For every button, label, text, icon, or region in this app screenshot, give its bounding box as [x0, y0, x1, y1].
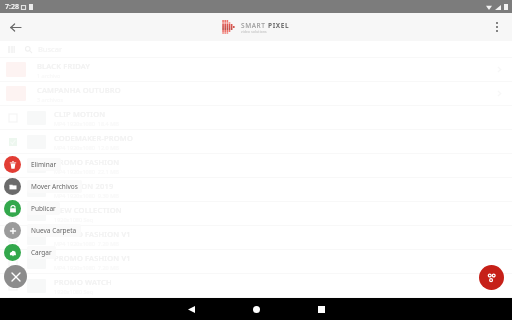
button[interactable]: Close menu [4, 265, 27, 288]
button[interactable]: Eliminar [4, 153, 61, 175]
button[interactable]: Recents [306, 298, 336, 320]
staticText: PROMO FASHION V1 [54, 229, 131, 239]
button[interactable]: Mover Archivos [4, 175, 82, 197]
staticText: PIXEL [268, 21, 290, 30]
button[interactable]: More options [485, 15, 509, 39]
button[interactable]: Home [241, 298, 271, 320]
button[interactable]: Publicar [4, 197, 60, 219]
button[interactable]: Back [3, 15, 27, 39]
staticText: CAMPANHA OUTUBRO [37, 85, 121, 95]
staticText: SMART [241, 21, 268, 30]
staticText: CODEMAKER-PROMO [54, 133, 133, 143]
staticText: Eliminar [31, 160, 57, 169]
staticText: PROMO FASHION V1 [54, 253, 131, 263]
staticText: 7:28 [5, 2, 19, 12]
button[interactable]: COLECION 2019 [0, 178, 512, 201]
button[interactable]: Back [176, 298, 206, 320]
button[interactable]: Nueva Carpeta [4, 219, 81, 241]
button[interactable]: PROMO FASHION V1 [0, 226, 512, 249]
button[interactable]: PROMO WATCH [0, 274, 512, 297]
button[interactable]: PROMO FASHION V1 [0, 250, 512, 273]
staticText: Nueva Carpeta [31, 226, 77, 235]
staticText: video solutions [241, 30, 267, 34]
staticText: NEW COLLECTION [54, 205, 122, 215]
staticText: Mover Archivos [31, 182, 78, 191]
button[interactable]: Cargar [4, 241, 56, 263]
staticText: COLECION 2019 [54, 181, 114, 191]
staticText: PROMO WATCH [54, 277, 112, 287]
staticText: Buscar [38, 44, 63, 54]
staticText: BLACK FRIDAY [37, 61, 91, 71]
staticText: PROMO FASHION [54, 157, 120, 167]
button[interactable]: NEW COLLECTION [0, 202, 512, 225]
button[interactable]: Actions [479, 265, 504, 290]
button[interactable]: PROMO FASHION [0, 154, 512, 177]
staticText: Publicar [31, 204, 56, 213]
staticText: CLIP MOTION [54, 109, 106, 119]
button[interactable] [0, 41, 512, 298]
staticText: Cargar [31, 248, 52, 257]
